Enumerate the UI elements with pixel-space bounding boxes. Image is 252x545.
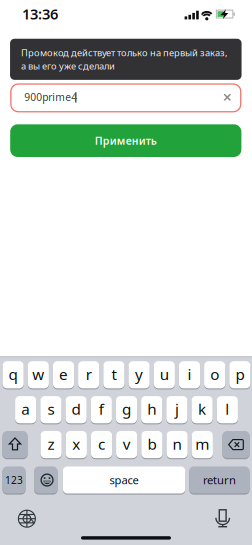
staticText: v bbox=[123, 433, 131, 454]
staticText: return bbox=[203, 472, 236, 488]
staticText: 123 bbox=[5, 473, 23, 487]
button[interactable]: m bbox=[192, 430, 213, 459]
button[interactable]: v bbox=[116, 430, 137, 459]
button[interactable]: e bbox=[53, 361, 74, 389]
staticText: m bbox=[195, 433, 209, 454]
button[interactable]: c bbox=[91, 430, 112, 459]
button[interactable]: d bbox=[65, 395, 87, 424]
button[interactable]: u bbox=[154, 361, 175, 389]
staticText: Применить bbox=[95, 133, 157, 148]
button[interactable]: space bbox=[63, 466, 185, 494]
button[interactable]: f bbox=[91, 395, 112, 424]
button[interactable]: Delete bbox=[222, 430, 249, 459]
button[interactable]: n bbox=[166, 430, 188, 459]
staticText: j bbox=[175, 398, 179, 419]
staticText: c bbox=[98, 433, 105, 454]
button[interactable]: a bbox=[15, 395, 36, 424]
staticText: h bbox=[147, 398, 156, 419]
button[interactable]: h bbox=[141, 395, 162, 424]
staticText: a bbox=[21, 398, 30, 419]
staticText: w bbox=[32, 364, 44, 384]
button[interactable]: return bbox=[189, 466, 249, 494]
staticText: 900prime4 bbox=[24, 90, 77, 104]
staticText: space bbox=[109, 472, 138, 488]
staticText: а вы его уже сделали bbox=[21, 60, 115, 72]
button[interactable]: p bbox=[229, 361, 250, 389]
button[interactable]: b bbox=[141, 430, 162, 459]
button[interactable]: Clear text bbox=[219, 89, 235, 105]
button[interactable]: x bbox=[66, 430, 87, 459]
button[interactable]: o bbox=[204, 361, 225, 389]
button[interactable]: w bbox=[28, 361, 49, 389]
staticText: s bbox=[47, 398, 54, 419]
button[interactable]: r bbox=[78, 361, 99, 389]
staticText: t bbox=[111, 364, 116, 384]
staticText: k bbox=[198, 398, 206, 419]
staticText: d bbox=[72, 398, 81, 419]
button[interactable]: j bbox=[166, 395, 187, 424]
staticText: p bbox=[235, 364, 244, 384]
button[interactable]: Next keyboard bbox=[17, 509, 37, 529]
staticText: 13:36 bbox=[22, 4, 58, 24]
button[interactable]: Dictate bbox=[213, 508, 233, 528]
staticText: Промокод действует только на первый зака… bbox=[21, 46, 228, 59]
staticText: z bbox=[48, 433, 55, 454]
button[interactable]: s bbox=[40, 395, 61, 424]
staticText: b bbox=[147, 433, 156, 454]
button[interactable]: 123 bbox=[2, 466, 25, 494]
button[interactable]: i bbox=[179, 361, 200, 389]
staticText: u bbox=[160, 364, 169, 384]
button[interactable]: Shift bbox=[2, 430, 27, 459]
button[interactable]: q bbox=[2, 361, 24, 389]
staticText: x bbox=[72, 433, 80, 454]
staticText: n bbox=[173, 433, 182, 454]
button[interactable]: l bbox=[217, 395, 238, 424]
staticText: q bbox=[9, 364, 18, 384]
button[interactable]: y bbox=[128, 361, 150, 389]
button[interactable]: Применить bbox=[10, 124, 241, 157]
button[interactable]: Emoji bbox=[34, 466, 57, 494]
button[interactable]: t bbox=[103, 361, 124, 389]
staticText: l bbox=[225, 398, 229, 419]
button[interactable]: k bbox=[191, 395, 213, 424]
staticText: o bbox=[210, 364, 219, 384]
staticText: e bbox=[59, 364, 68, 384]
staticText: r bbox=[86, 364, 92, 384]
button[interactable]: z bbox=[40, 430, 62, 459]
staticText: i bbox=[187, 364, 191, 384]
staticText: y bbox=[135, 364, 143, 384]
button[interactable]: g bbox=[116, 395, 137, 424]
staticText: f bbox=[99, 398, 104, 419]
staticText: g bbox=[122, 398, 131, 419]
